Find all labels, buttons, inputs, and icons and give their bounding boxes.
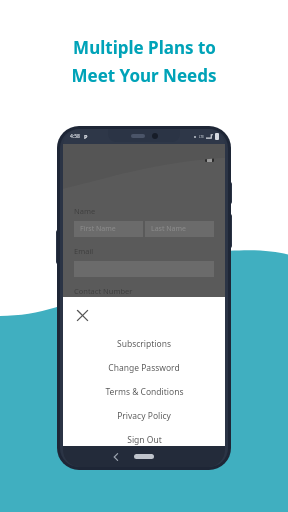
button[interactable]: First Name <box>74 221 143 237</box>
button[interactable]: Terms & Conditions <box>63 380 225 404</box>
staticText: Name <box>74 206 96 216</box>
button[interactable]: Subscriptions <box>63 332 225 356</box>
staticText: Terms & Conditions <box>105 386 184 398</box>
staticText: Subscriptions <box>117 338 171 350</box>
staticText: P <box>84 133 88 140</box>
staticText: 4:58 <box>70 133 80 140</box>
button[interactable]: Sign Out <box>63 428 225 452</box>
staticText: First Name <box>80 224 116 234</box>
staticText: Sign Out <box>127 434 162 446</box>
staticText: Privacy Policy <box>117 410 171 422</box>
staticText: Last Name <box>151 224 187 234</box>
staticText: Change Password <box>108 362 180 374</box>
button[interactable]: Change Password <box>63 356 225 380</box>
button[interactable]: Last Name <box>145 221 214 237</box>
staticText: Contact Number <box>74 286 133 296</box>
button[interactable]: Close <box>76 309 89 322</box>
staticText: LTE <box>199 135 204 139</box>
button[interactable]: Back <box>111 452 121 462</box>
other: Home <box>134 454 154 459</box>
staticText: Multiple Plans to <box>73 36 216 59</box>
staticText: Meet Your Needs <box>71 64 217 87</box>
staticText: Email <box>74 246 94 256</box>
button[interactable]: Save <box>202 150 216 164</box>
button[interactable]: Privacy Policy <box>63 404 225 428</box>
